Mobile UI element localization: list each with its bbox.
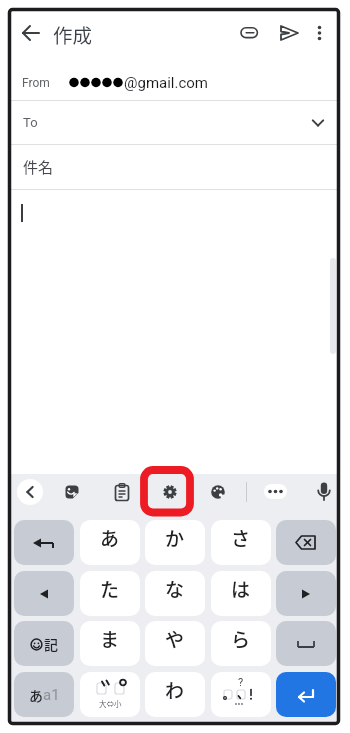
button[interactable]: さ (211, 520, 271, 565)
staticText: あ (100, 524, 120, 552)
staticText: 件名 (23, 156, 54, 178)
button[interactable] (276, 672, 336, 717)
button[interactable]: あ (80, 520, 140, 565)
button[interactable] (13, 15, 49, 51)
button[interactable]: あ (14, 672, 74, 717)
button[interactable] (63, 483, 81, 501)
staticText: な (165, 575, 185, 603)
button[interactable]: た (80, 571, 140, 616)
button[interactable] (14, 520, 74, 565)
button[interactable]: な (145, 571, 205, 616)
button[interactable] (114, 483, 130, 501)
button[interactable] (17, 479, 43, 505)
staticText: ま (100, 625, 120, 653)
button[interactable]: ? (211, 672, 271, 717)
staticText: わ (165, 676, 185, 704)
button[interactable] (276, 520, 336, 565)
staticText: 作成 (53, 20, 93, 47)
button[interactable] (161, 483, 179, 501)
staticText: あ (29, 685, 43, 705)
button[interactable]: わ (145, 672, 205, 717)
button[interactable] (264, 484, 287, 499)
staticText: 大⇔小 (99, 698, 122, 709)
button[interactable]: To (11, 101, 337, 144)
button[interactable]: ら (211, 621, 271, 666)
button[interactable] (234, 15, 270, 51)
staticText: か (165, 524, 185, 552)
button[interactable] (11, 57, 337, 100)
staticText: @gmail.com (124, 74, 209, 92)
button[interactable]: か (145, 520, 205, 565)
staticText: To (23, 115, 38, 130)
button[interactable] (306, 15, 336, 51)
button[interactable] (271, 15, 307, 51)
staticText: From (22, 76, 50, 90)
button[interactable]: ま (80, 621, 140, 666)
staticText: た (100, 575, 120, 603)
staticText: ら (231, 625, 251, 653)
staticText: や (165, 625, 185, 653)
button[interactable] (276, 621, 336, 666)
button[interactable]: 大⇔小 (80, 672, 140, 717)
staticText: さ (231, 524, 251, 552)
button[interactable] (210, 484, 227, 500)
button[interactable]: 記 (14, 621, 74, 666)
button[interactable] (14, 571, 74, 616)
button[interactable] (315, 481, 333, 502)
button[interactable] (276, 571, 336, 616)
button[interactable]: や (145, 621, 205, 666)
staticText: ? (238, 676, 244, 688)
staticText: は (231, 575, 251, 603)
button[interactable]: は (211, 571, 271, 616)
staticText: a1 (43, 686, 60, 704)
button[interactable]: 件名 (11, 145, 337, 189)
staticText: 記 (44, 634, 58, 654)
